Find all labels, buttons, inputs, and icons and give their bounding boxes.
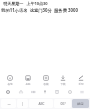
button[interactable]: More: [76, 89, 87, 95]
staticText: |: [22, 102, 24, 106]
staticText: 00?: [60, 102, 66, 106]
button[interactable]: Keyboard: [27, 89, 38, 95]
staticText: 明天星期一 上午10点30: [3, 1, 48, 6]
button[interactable]: Voice input: [2, 89, 13, 95]
staticText: 收藏: [43, 82, 49, 85]
button[interactable]: Comma: [17, 99, 28, 108]
staticText: 表情: [7, 82, 13, 85]
button[interactable]: Symbols: [1, 99, 16, 108]
button[interactable]: Symbols2: [54, 99, 71, 108]
button[interactable]: Skin: [19, 75, 36, 85]
button[interactable]: Download: [54, 75, 71, 85]
button[interactable]: Favorites: [37, 75, 54, 85]
button[interactable]: Emoji: [1, 75, 18, 85]
staticText: 下载: [60, 82, 66, 85]
button[interactable]: Voice: [39, 89, 50, 95]
button[interactable]: Home: [15, 89, 26, 95]
staticText: 手写: [78, 82, 84, 85]
staticText: 确定: [77, 102, 84, 106]
staticText: ABC: [38, 102, 45, 106]
button[interactable]: Handwriting: [72, 75, 89, 85]
button[interactable]: Theme: [64, 89, 75, 95]
button[interactable]: Clipboard: [51, 89, 62, 95]
staticText: 我的11小店名 这堂门30分 服务费 3000: [1, 7, 78, 13]
button[interactable]: Enter: [72, 99, 89, 108]
staticText: —: [7, 102, 11, 106]
button[interactable]: Space: [29, 99, 53, 108]
staticText: 皮肤: [25, 82, 31, 85]
